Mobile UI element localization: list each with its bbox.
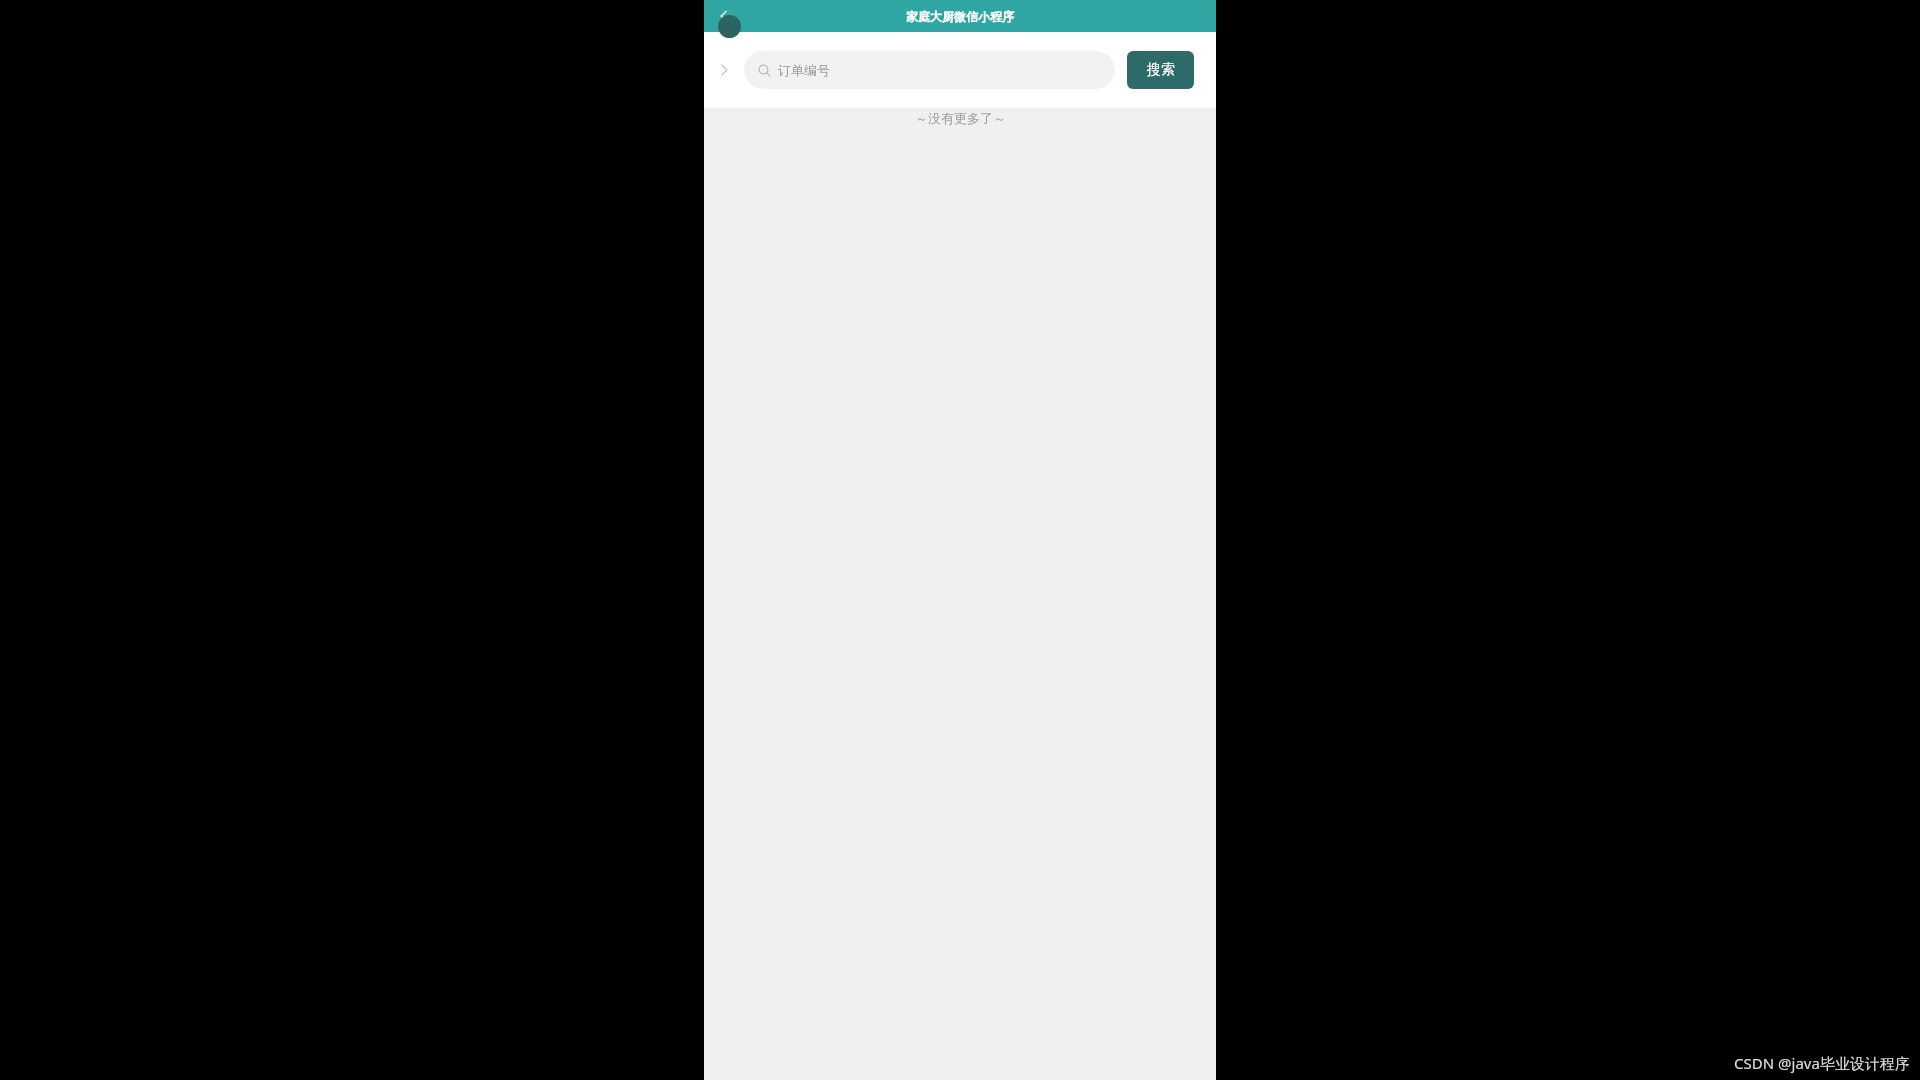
staticText: ～没有更多了～ [915,110,1006,126]
staticText: 家庭大厨微信小程序 [906,9,1014,24]
button[interactable]: Expand [710,56,738,84]
button[interactable]: 订单编号 [744,51,1115,89]
staticText: CSDN @java毕业设计程序 [1734,1053,1910,1073]
button[interactable]: 搜索 [1127,51,1194,89]
staticText: 订单编号 [778,62,830,78]
button[interactable]: Profile [718,15,741,38]
staticText: 搜索 [1147,61,1175,79]
button[interactable]: Back [712,4,736,28]
